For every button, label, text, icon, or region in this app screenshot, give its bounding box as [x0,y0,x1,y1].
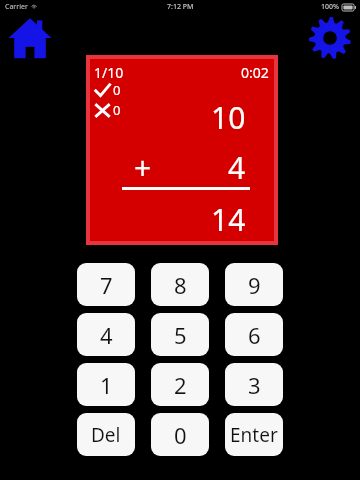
staticText: + [134,147,152,188]
staticText: 4 [228,147,246,188]
button[interactable]: 5 [151,313,209,356]
staticText: 0 [113,101,121,119]
button[interactable]: 9 [225,263,283,306]
button[interactable]: 7 [77,263,135,306]
staticText: 7:12 PM [167,2,194,12]
staticText: 6 [248,320,261,350]
staticText: 10 [211,97,246,138]
button[interactable]: 2 [151,363,209,406]
button[interactable]: Del [77,413,135,456]
staticText: 1/10 [94,63,124,82]
button[interactable]: Home [8,16,52,60]
staticText: 14 [211,199,246,240]
button[interactable]: 6 [225,313,283,356]
staticText: Carrier [5,2,28,12]
button[interactable]: 0 [151,413,209,456]
button[interactable]: 3 [225,363,283,406]
staticText: 9 [248,270,261,300]
staticText: 100% [321,2,339,12]
staticText: 5 [174,320,187,350]
staticText: 0 [174,420,187,450]
staticText: Enter [230,422,278,448]
staticText: 3 [248,370,261,400]
button[interactable]: 1 [77,363,135,406]
button[interactable]: 8 [151,263,209,306]
button[interactable]: Settings [308,16,352,60]
staticText: 2 [174,370,187,400]
button[interactable]: 4 [77,313,135,356]
staticText: 4 [100,320,113,350]
staticText: 7 [100,270,113,300]
staticText: 0 [113,81,121,99]
staticText: 8 [174,270,187,300]
staticText: Del [91,422,121,448]
staticText: 1 [100,370,113,400]
button[interactable]: Enter [225,413,283,456]
staticText: 0:02 [241,63,269,82]
